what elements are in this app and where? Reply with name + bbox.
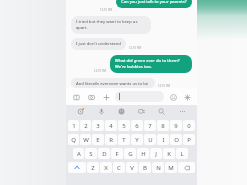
- staticText: Can you just talk to your parents?: [121, 0, 187, 5]
- staticText: A: [77, 150, 81, 158]
- button[interactable]: B: [139, 162, 151, 173]
- staticText: W: [83, 136, 89, 144]
- button[interactable]: V: [126, 162, 138, 173]
- staticText: 4: [109, 122, 113, 130]
- button[interactable]: 3: [92, 120, 104, 131]
- staticText: 2: [84, 122, 88, 130]
- staticText: 0: [187, 122, 191, 130]
- staticText: U: [148, 136, 153, 144]
- staticText: E: [96, 136, 100, 144]
- button[interactable]: More options: [177, 106, 188, 117]
- button[interactable]: 2: [80, 120, 91, 131]
- button[interactable]: Stickers: [116, 106, 127, 117]
- staticText: M: [168, 164, 174, 172]
- button[interactable]: Translate: [136, 106, 147, 117]
- button[interactable]: Shift: [68, 162, 86, 173]
- button[interactable]: What did green ever do to them? We're bu…: [110, 55, 192, 73]
- button[interactable]: J: [150, 148, 162, 159]
- button[interactable]: I tried but they want to keep us apart.: [71, 16, 151, 34]
- button[interactable]: P: [183, 134, 195, 145]
- button[interactable]: [115, 91, 164, 102]
- button[interactable]: S: [85, 148, 97, 159]
- staticText: I: [162, 136, 165, 144]
- button[interactable]: U: [144, 134, 156, 145]
- staticText: B: [143, 164, 147, 172]
- button[interactable]: Keyboard settings: [75, 106, 86, 117]
- staticText: V: [130, 164, 134, 172]
- staticText: What did green ever do to them? We're bu…: [115, 58, 187, 70]
- button[interactable]: 4: [105, 120, 117, 131]
- staticText: 9: [174, 122, 178, 130]
- staticText: 12:15 PM: [158, 84, 171, 88]
- button[interactable]: 6: [131, 120, 143, 131]
- staticText: K: [167, 150, 171, 158]
- button[interactable]: D: [98, 148, 110, 159]
- staticText: L: [180, 150, 184, 158]
- staticText: C: [117, 164, 121, 172]
- button[interactable]: Add attachment: [101, 92, 111, 102]
- button[interactable]: W: [80, 134, 91, 145]
- button[interactable]: Search: [156, 106, 167, 117]
- button[interactable]: Voice input: [96, 106, 107, 117]
- button[interactable]: 5: [118, 120, 130, 131]
- button[interactable]: H: [137, 148, 149, 159]
- staticText: 12:15 PM: [100, 8, 113, 12]
- staticText: D: [102, 150, 107, 158]
- button[interactable]: Q: [68, 134, 79, 145]
- staticText: 12:15 PM: [94, 69, 107, 73]
- button[interactable]: 7: [144, 120, 156, 131]
- staticText: T: [122, 136, 126, 144]
- button[interactable]: K: [163, 148, 175, 159]
- staticText: 7: [148, 122, 152, 130]
- staticText: 6: [135, 122, 139, 130]
- button[interactable]: X: [100, 162, 112, 173]
- button[interactable]: Camera: [86, 92, 96, 102]
- staticText: O: [174, 136, 179, 144]
- staticText: J: [155, 150, 157, 158]
- staticText: P: [187, 136, 191, 144]
- button[interactable]: Gallery: [71, 92, 81, 102]
- staticText: G: [128, 150, 133, 158]
- button[interactable]: I just don't understand: [71, 38, 126, 50]
- button[interactable]: Can you just talk to your parents?: [116, 0, 192, 8]
- button[interactable]: A: [73, 148, 84, 159]
- staticText: F: [115, 150, 119, 158]
- button[interactable]: R: [105, 134, 117, 145]
- staticText: Y: [135, 136, 139, 144]
- staticText: 3: [96, 122, 100, 130]
- button[interactable]: And literally everyone wants us to be to…: [71, 78, 155, 88]
- button[interactable]: E: [92, 134, 104, 145]
- button[interactable]: 8: [157, 120, 169, 131]
- button[interactable]: G: [124, 148, 136, 159]
- button[interactable]: Backspace: [178, 162, 195, 173]
- staticText: And literally everyone wants us to be to…: [76, 81, 150, 85]
- button[interactable]: F: [111, 148, 123, 159]
- button[interactable]: L: [176, 148, 188, 159]
- staticText: Q: [71, 136, 76, 144]
- button[interactable]: C: [113, 162, 125, 173]
- button[interactable]: I: [157, 134, 169, 145]
- button[interactable]: 9: [170, 120, 182, 131]
- button[interactable]: O: [170, 134, 182, 145]
- button[interactable]: Z: [87, 162, 99, 173]
- staticText: S: [89, 150, 93, 158]
- staticText: 5: [122, 122, 126, 130]
- staticText: Z: [91, 164, 95, 172]
- staticText: 1: [72, 122, 76, 130]
- staticText: X: [104, 164, 108, 172]
- button[interactable]: T: [118, 134, 130, 145]
- staticText: H: [141, 150, 146, 158]
- staticText: 8: [161, 122, 165, 130]
- button[interactable]: Emoji: [168, 92, 178, 102]
- staticText: I tried but they want to keep us apart.: [76, 19, 146, 31]
- button[interactable]: N: [152, 162, 164, 173]
- staticText: I just don't understand: [76, 41, 121, 47]
- button[interactable]: M: [165, 162, 177, 173]
- button[interactable]: Y: [131, 134, 143, 145]
- staticText: 12:15 PM: [129, 46, 142, 50]
- staticText: R: [109, 136, 113, 144]
- staticText: N: [156, 164, 161, 172]
- button[interactable]: 1: [68, 120, 79, 131]
- button[interactable]: 0: [183, 120, 195, 131]
- button[interactable]: Send options: [182, 92, 192, 102]
